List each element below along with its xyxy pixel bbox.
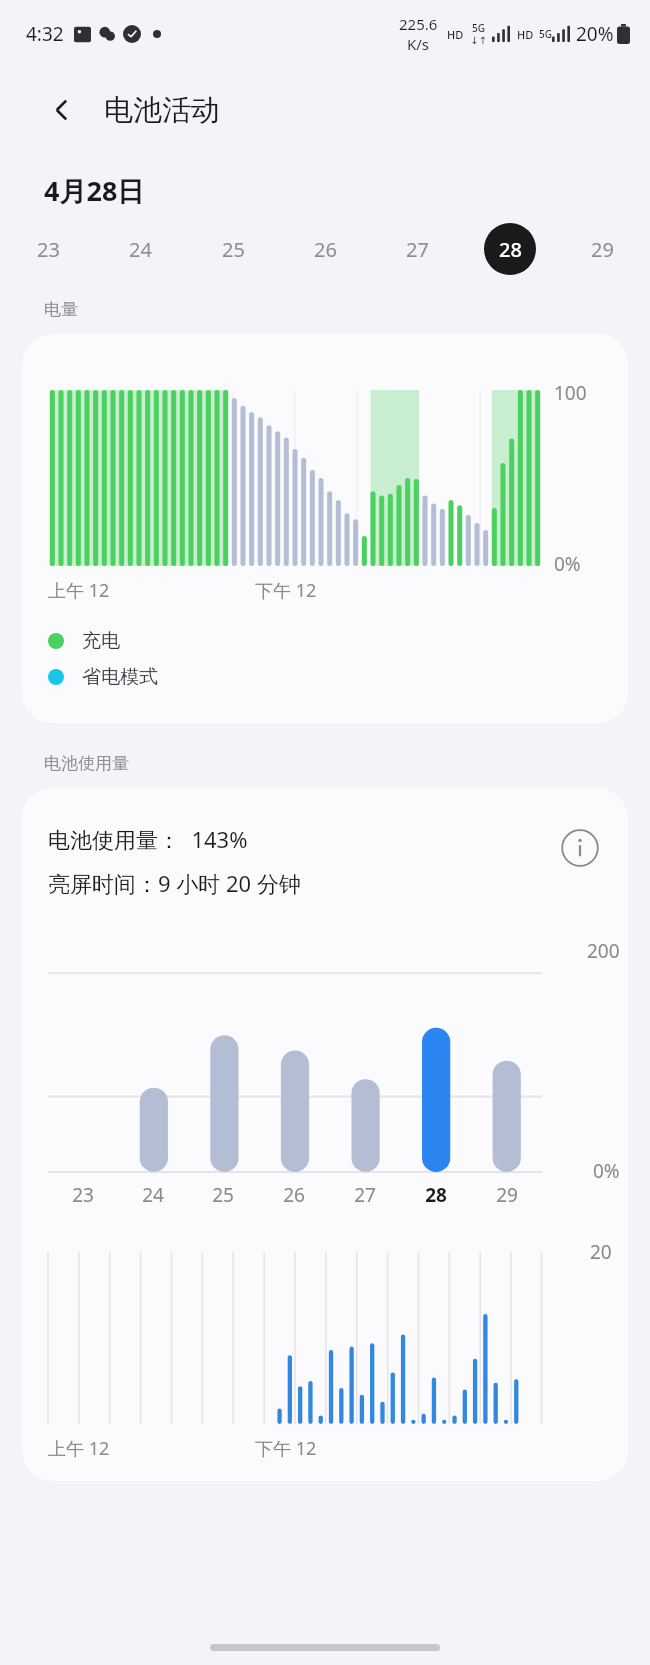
staticText: 225.6 [399,14,438,34]
staticText: 电池使用量： 143% [48,824,248,854]
staticText: 23 [72,1182,94,1208]
staticText: 27 [406,236,429,263]
staticText: 29 [591,236,614,263]
button[interactable]: Back [34,82,90,138]
button[interactable]: 29 [576,223,628,275]
staticText: 20% [576,21,614,47]
staticText: 0% [554,551,581,577]
button[interactable]: 28 [484,223,536,275]
staticText: HD [447,27,464,42]
staticText: 5G [539,27,552,41]
staticText: 电量 [44,299,78,320]
staticText: 4:32 [26,21,64,47]
staticText: HD [517,27,534,42]
staticText: 25 [222,236,245,263]
staticText: 200 [587,938,620,964]
staticText: 下午 12 [255,1436,317,1461]
staticText: 24 [129,236,152,263]
staticText: 27 [354,1182,376,1208]
staticText: 4月28日 [44,172,145,209]
staticText: 省电模式 [82,665,158,689]
staticText: 0% [593,1158,620,1184]
button[interactable]: 27 [391,223,443,275]
staticText: 100 [554,380,587,406]
button[interactable]: 24 [114,223,166,275]
staticText: 24 [142,1182,164,1208]
staticText: 28 [425,1182,447,1208]
staticText: 26 [283,1182,305,1208]
staticText: 电池活动 [104,92,220,129]
staticText: 5G [472,21,485,35]
staticText: 23 [37,236,60,263]
staticText: 充电 [82,629,120,653]
staticText: 下午 12 [255,578,317,603]
button[interactable]: 电池使用量： 143% [22,788,628,1481]
button[interactable]: 23 [22,223,74,275]
staticText: 29 [496,1182,518,1208]
staticText: 电池使用量 [44,753,129,774]
button[interactable]: 100 [22,334,628,723]
staticText: 上午 12 [48,1436,110,1461]
staticText: 亮屏时间：9 小时 20 分钟 [48,868,301,898]
staticText: ↓↑ [470,35,487,47]
staticText: K/s [407,34,430,54]
button[interactable]: 25 [207,223,259,275]
staticText: 25 [212,1182,234,1208]
staticText: 20 [590,1239,612,1265]
staticText: 26 [314,236,337,263]
staticText: 上午 12 [48,578,110,603]
button[interactable]: Info [556,824,604,872]
button[interactable]: 26 [299,223,351,275]
staticText: 28 [499,236,522,263]
